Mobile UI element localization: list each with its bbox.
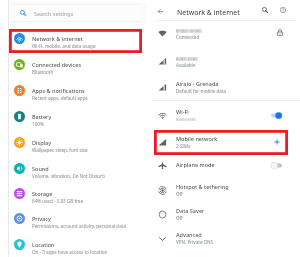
- staticText: 64% used - 5.83 GB free: [32, 198, 83, 204]
- staticText: Airalo - Grenada: [176, 80, 219, 87]
- staticText: Apps & notifications: [32, 87, 85, 94]
- staticText: Available: [176, 62, 196, 68]
- staticText: Storage: [32, 190, 53, 197]
- button[interactable]: Back: [153, 4, 167, 18]
- button[interactable]: Display: [9, 132, 141, 152]
- button[interactable]: Secured network: [274, 26, 286, 38]
- staticText: Default for mobile data: [176, 88, 227, 94]
- staticText: Data Saver: [176, 207, 205, 214]
- staticText: Volume, vibration, Do Not Disturb: [32, 173, 105, 179]
- button[interactable]: Hotspot & tethering: [154, 179, 288, 201]
- button[interactable]: Wi-Fi on: [267, 109, 285, 122]
- button[interactable]: Wi-Fi: [154, 104, 288, 126]
- button[interactable]: Connected devices: [9, 54, 141, 74]
- staticText: VPN, Private DNS: [176, 239, 214, 245]
- staticText: Advanced: [176, 231, 202, 238]
- button[interactable]: Battery: [9, 106, 141, 126]
- button[interactable]: Airalo - Grenada: [154, 76, 288, 98]
- button[interactable]: Connected: [154, 22, 288, 44]
- button[interactable]: Search: [258, 3, 272, 17]
- staticText: Search settings: [34, 10, 74, 17]
- staticText: Sound: [32, 165, 49, 172]
- staticText: Permissions, account activity, personal …: [32, 223, 126, 229]
- button[interactable]: Data Saver: [154, 203, 288, 225]
- button[interactable]: Help: [276, 3, 290, 17]
- staticText: Off: [176, 191, 183, 197]
- staticText: 2 SIMs: [176, 143, 191, 149]
- button[interactable]: Available: [154, 50, 288, 72]
- button[interactable]: Add network: [271, 136, 283, 148]
- button[interactable]: Privacy: [9, 208, 141, 228]
- staticText: Location: [32, 241, 55, 248]
- staticText: 100%: [32, 121, 44, 127]
- staticText: Off: [176, 215, 183, 221]
- button[interactable]: Search settings: [12, 5, 141, 21]
- staticText: Battery: [32, 113, 52, 120]
- staticText: Hotspot & tethering: [176, 183, 229, 190]
- staticText: Airplane mode: [176, 161, 215, 168]
- button[interactable]: Location: [9, 234, 141, 254]
- button[interactable]: Advanced: [154, 227, 288, 249]
- staticText: Network & internet: [32, 35, 83, 42]
- staticText: Mobile network: [176, 135, 218, 142]
- staticText: Recent apps, default apps: [32, 95, 88, 101]
- staticText: Wi-Fi: [176, 108, 189, 115]
- staticText: On - 3 apps have access to location: [32, 249, 108, 255]
- button[interactable]: Network & internet: [9, 28, 141, 48]
- button[interactable]: Sound: [9, 158, 141, 178]
- button[interactable]: Apps & notifications: [9, 80, 141, 100]
- staticText: Network & internet: [177, 8, 240, 17]
- staticText: Display: [32, 139, 52, 146]
- staticText: Connected devices: [32, 61, 82, 68]
- staticText: Wi-Fi, mobile, and data usage: [32, 43, 96, 49]
- staticText: Connected: [176, 34, 200, 40]
- button[interactable]: Airplane mode off: [267, 159, 285, 172]
- staticText: Privacy: [32, 215, 51, 222]
- staticText: Bluetooth: [32, 69, 54, 75]
- staticText: Wallpaper, sleep, font size: [32, 147, 88, 153]
- button[interactable]: Airplane mode: [154, 154, 288, 176]
- button[interactable]: Storage: [9, 183, 141, 203]
- button[interactable]: Mobile network: [154, 131, 288, 153]
